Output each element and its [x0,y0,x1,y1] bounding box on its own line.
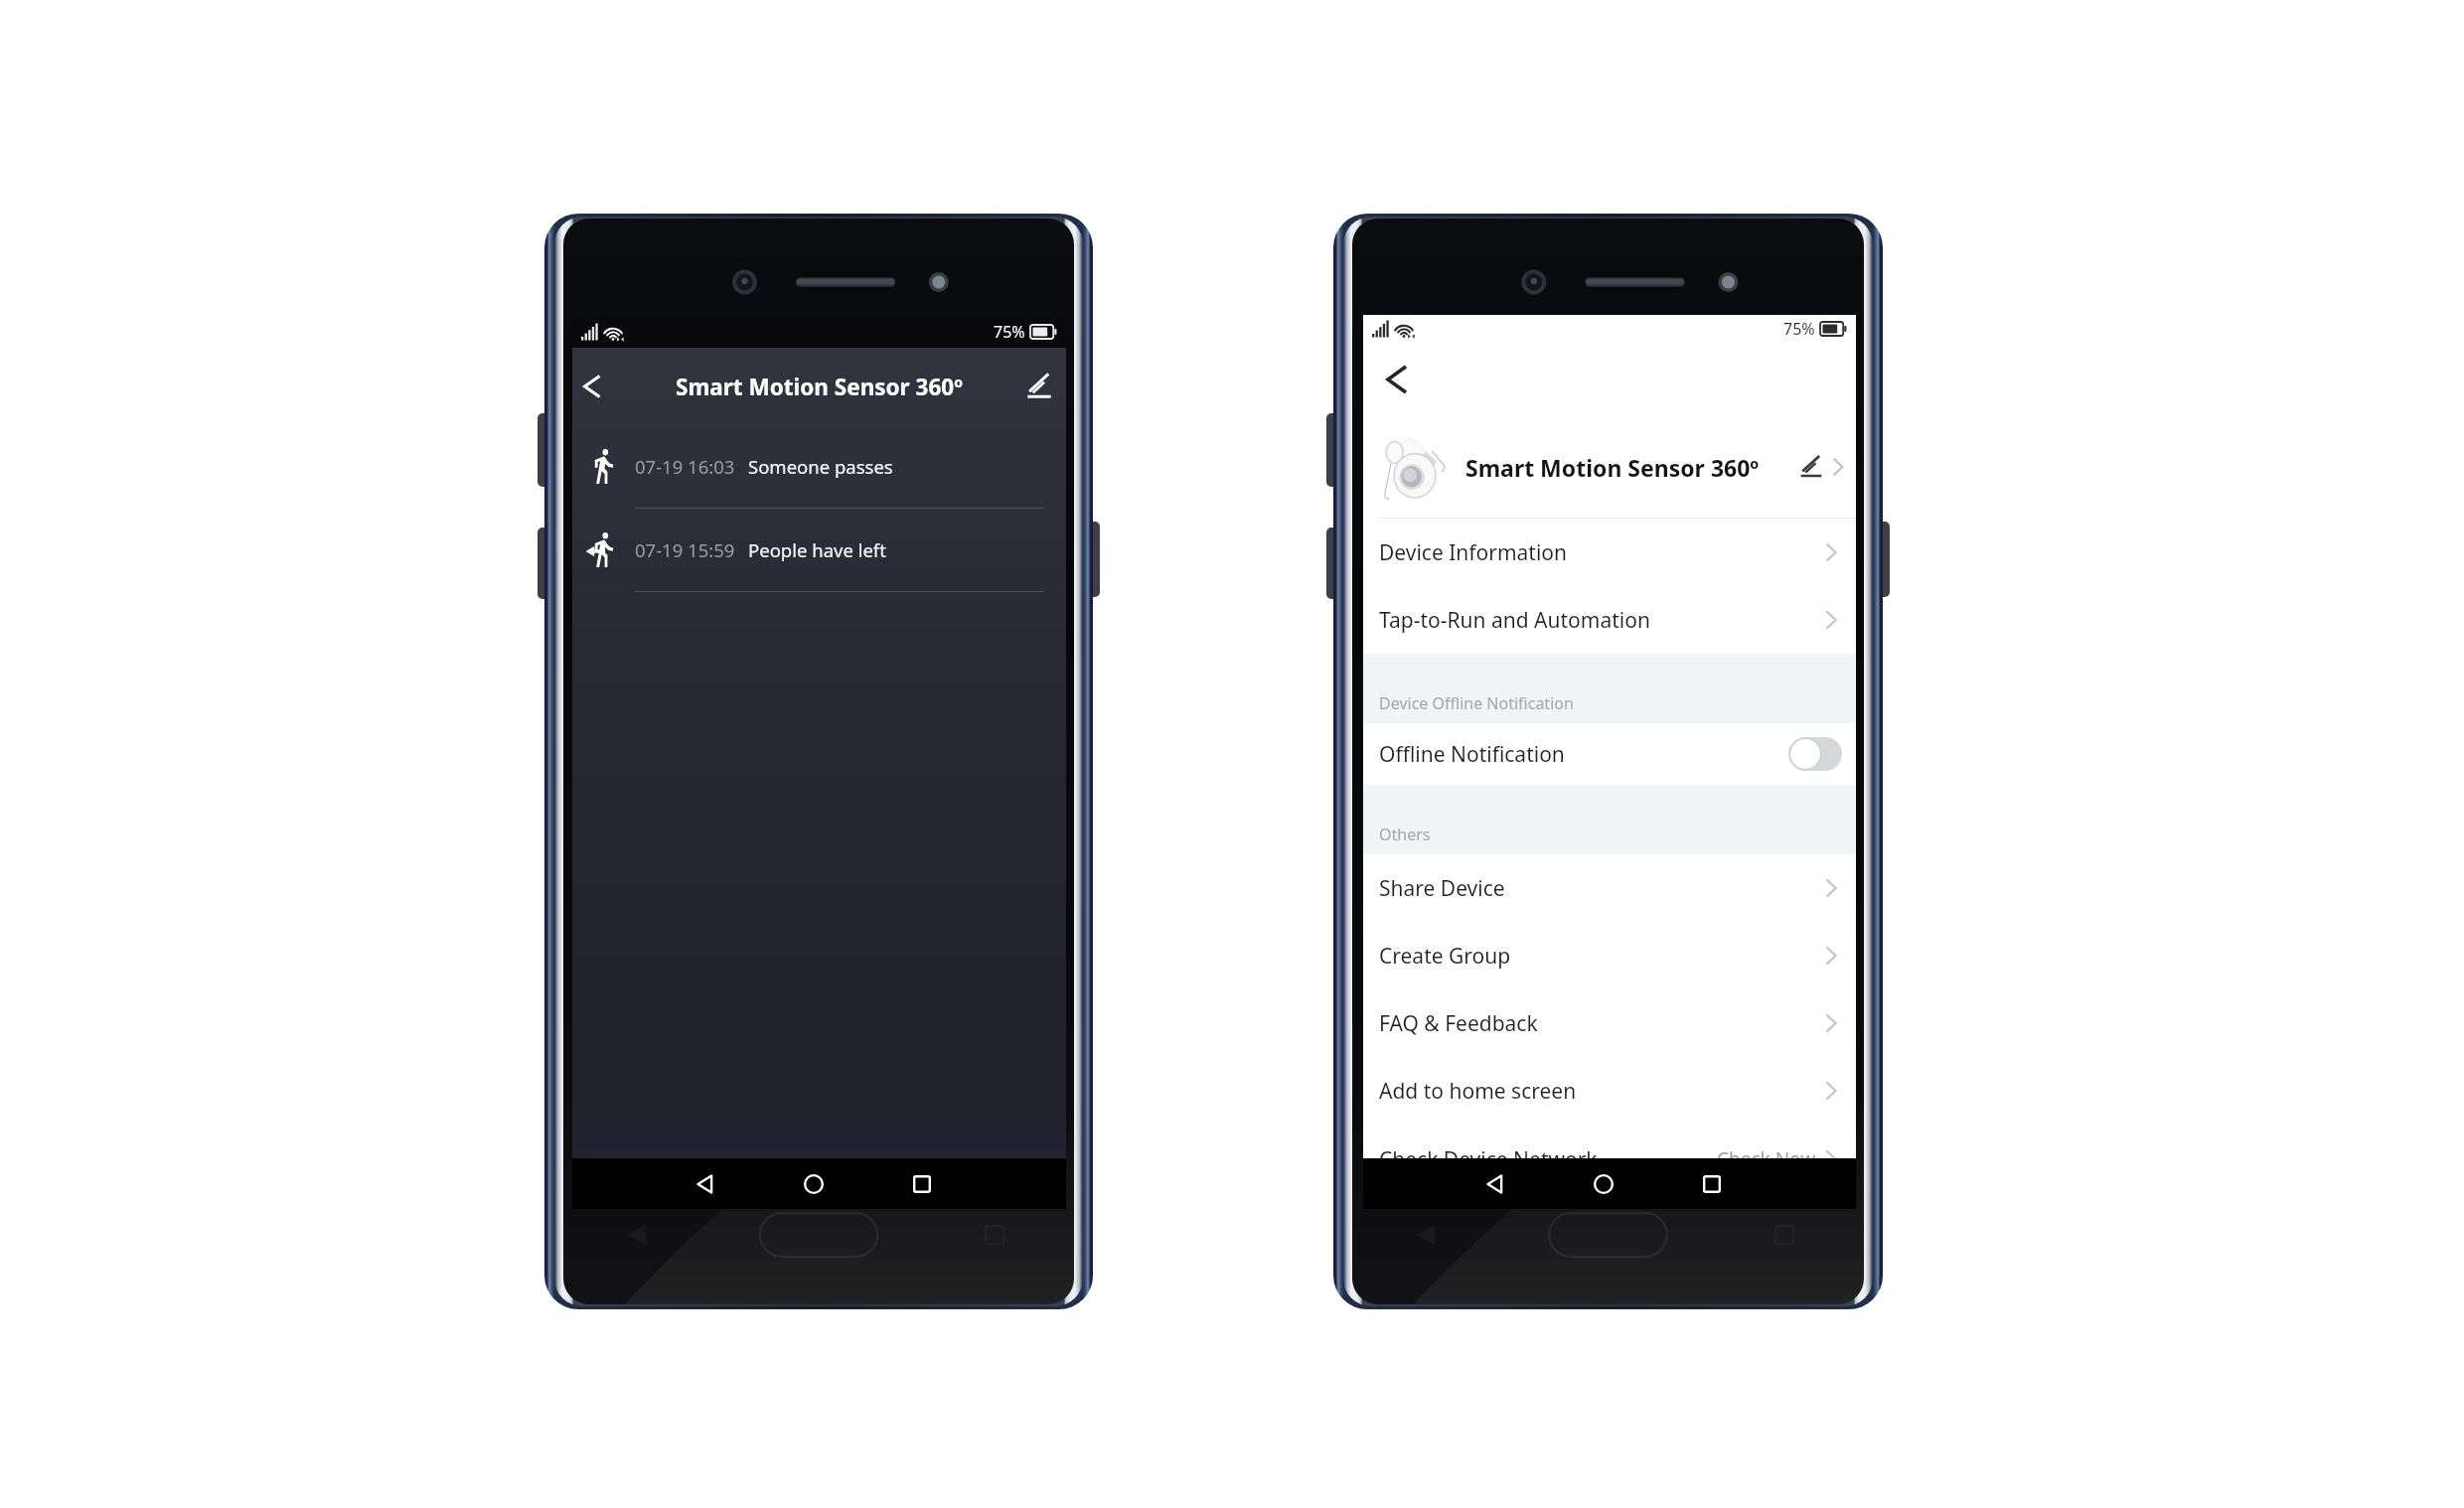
button[interactable]: Rename device [1796,452,1826,482]
button[interactable]: Home [797,1167,831,1201]
button[interactable]: Back [689,1167,722,1201]
staticText: FAQ & Feedback [1379,1009,1538,1038]
button[interactable]: Recent apps [905,1167,939,1201]
button[interactable]: Check Device Network [1363,1126,1856,1158]
staticText: Check Device Network [1379,1145,1598,1158]
staticText: Someone passes [748,454,893,479]
staticText: Check Now [1717,1146,1816,1158]
button[interactable]: Offline Notification [1363,723,1856,785]
staticText: Smart Motion Sensor 360º [676,372,963,402]
button[interactable]: Edit name [1017,365,1061,408]
button[interactable]: Back [1371,354,1423,405]
button[interactable]: 07-19 16:03 [572,425,1066,509]
staticText: 75% [1783,318,1815,340]
staticText: Offline Notification [1379,740,1565,769]
button[interactable]: Create Group [1363,922,1856,989]
staticText: People have left [748,537,886,562]
staticText: Create Group [1379,942,1511,971]
staticText: Add to home screen [1379,1077,1577,1106]
button[interactable]: Back [1478,1167,1512,1201]
button[interactable]: Add to home screen [1363,1057,1856,1125]
staticText: Share Device [1379,874,1505,903]
button[interactable]: Home [1587,1167,1620,1201]
staticText: Others [1379,824,1431,845]
button[interactable]: Share Device [1363,854,1856,922]
staticText: 07-19 15:59 [635,537,735,562]
button[interactable]: FAQ & Feedback [1363,989,1856,1057]
staticText: Device Offline Notification [1379,692,1574,714]
button[interactable]: Back [568,363,616,410]
staticText: Tap-to-Run and Automation [1379,606,1650,635]
button[interactable]: Recent apps [1695,1167,1729,1201]
button[interactable]: Device Information [1363,519,1856,586]
staticText: Smart Motion Sensor 360º [1465,452,1760,483]
button[interactable]: Smart Motion Sensor 360º [1363,416,1856,518]
staticText: Device Information [1379,538,1568,567]
staticText: 75% [994,321,1025,343]
button[interactable]: 07-19 15:59 [572,509,1066,592]
staticText: 07-19 16:03 [635,454,735,479]
button[interactable]: Offline notification switch, off [1788,737,1842,771]
button[interactable]: Tap-to-Run and Automation [1363,586,1856,654]
